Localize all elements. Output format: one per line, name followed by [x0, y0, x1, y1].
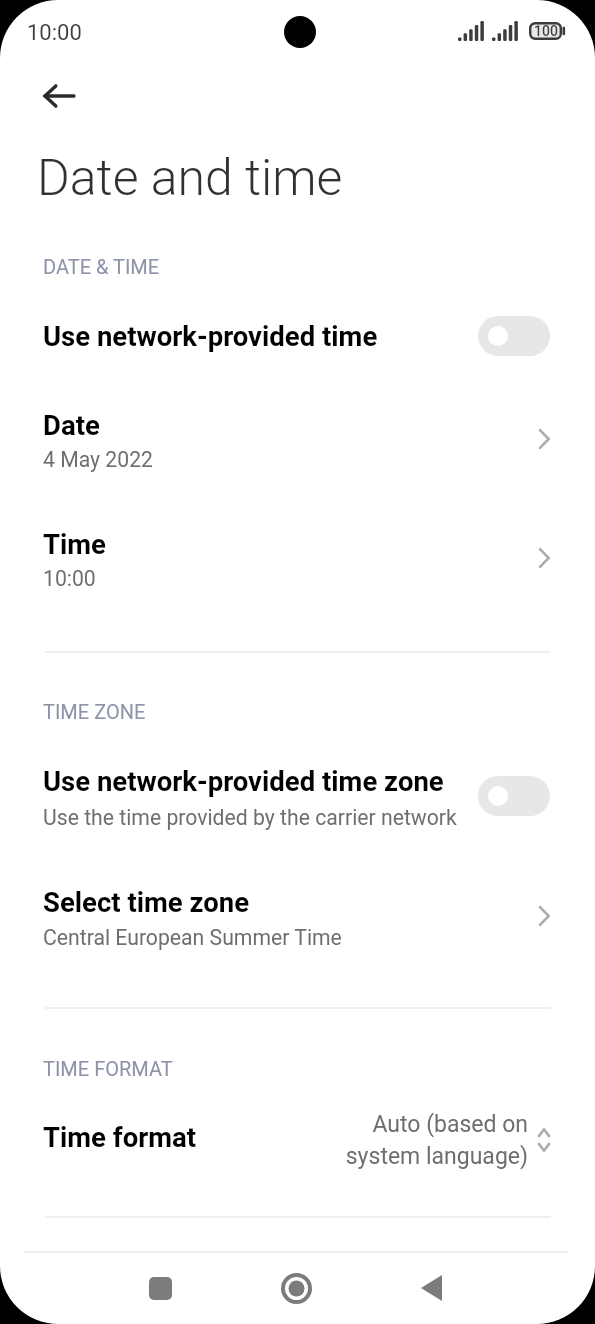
staticText: TIME FORMAT — [43, 1057, 173, 1080]
staticText: DATE & TIME — [43, 255, 160, 278]
staticText: Use network-provided time — [43, 320, 378, 352]
button[interactable]: Time — [0, 500, 595, 608]
staticText: Central European Summer Time — [43, 925, 342, 950]
staticText: TIME ZONE — [43, 700, 146, 723]
staticText: Use the time provided by the carrier net… — [43, 805, 457, 830]
button[interactable]: Back — [363, 1252, 499, 1324]
staticText: 10:00 — [43, 566, 96, 591]
staticText: Time format — [43, 1121, 197, 1153]
button[interactable]: Date — [0, 381, 595, 489]
button[interactable]: Select time zone — [0, 858, 595, 967]
staticText: Time — [43, 528, 106, 560]
staticText: Auto (based on system language) — [320, 1111, 528, 1169]
button[interactable]: Use network-provided time — [0, 292, 595, 380]
staticText: Date and time — [37, 149, 343, 208]
button[interactable]: Navigate up — [30, 67, 88, 125]
staticText: 4 May 2022 — [43, 447, 153, 472]
staticText: Use network-provided time zone — [43, 765, 444, 797]
staticText: 100 — [534, 23, 558, 39]
button[interactable]: Use network-provided time zone — [0, 737, 595, 847]
staticText: Select time zone — [43, 886, 250, 918]
staticText: Date — [43, 409, 100, 441]
staticText: 10:00 — [27, 20, 82, 46]
button[interactable]: Home — [228, 1252, 364, 1324]
button[interactable]: Time format — [0, 1095, 595, 1185]
button[interactable]: Recent apps — [92, 1252, 228, 1324]
